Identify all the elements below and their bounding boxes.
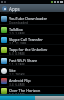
staticText: 5.8 8.1MB	[9, 93, 25, 97]
staticText: Android Flip	[9, 78, 31, 83]
staticText: Over The Horizon	[9, 88, 41, 93]
staticText: Fast Wi-Fi Share	[9, 58, 38, 63]
button[interactable]: Tapp for the Unbeliev	[0, 45, 64, 55]
staticText: 6.3 0.9MB	[9, 52, 25, 56]
staticText: TalkBox	[9, 27, 23, 32]
staticText: Downloads	[1, 11, 17, 15]
button[interactable]: YouTube Downloader	[0, 14, 64, 24]
button[interactable]	[0, 96, 64, 100]
staticText: 3.4 6.4MB	[9, 83, 25, 87]
staticText: YouTube Downloader	[9, 16, 48, 21]
button[interactable]: Apps icon	[0, 4, 64, 12]
staticText: Site	[9, 68, 16, 73]
staticText: 1.1 3.2MB	[9, 63, 25, 67]
staticText: 2.2 780KB	[9, 73, 25, 77]
staticText: Skype Call Transfer	[9, 37, 43, 42]
staticText: 3.1 11.2MB	[9, 42, 27, 46]
button[interactable]: Skype Call Transfer	[0, 35, 64, 45]
button[interactable]: Android Flip	[0, 76, 64, 86]
button[interactable]: Fast Wi-Fi Share	[0, 56, 64, 66]
button[interactable]: TalkBox	[0, 25, 64, 35]
staticText: Apps	[9, 6, 20, 12]
staticText: Tapp for the Unbeliev	[9, 47, 48, 52]
button[interactable]: Over The Horizon	[0, 86, 64, 96]
other: Apps icon	[2, 6, 7, 11]
staticText: 2.0 1.4MB	[9, 32, 25, 36]
staticText: Downloaded	[9, 21, 28, 25]
button[interactable]: Site	[0, 66, 64, 76]
